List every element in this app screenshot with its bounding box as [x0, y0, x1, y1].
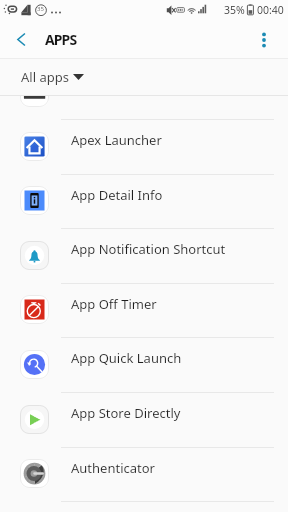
- button[interactable]: App Quick Launch: [0, 338, 288, 392]
- staticText: 35: [37, 5, 44, 13]
- button[interactable]: App Off Timer: [0, 284, 288, 337]
- staticText: All apps: [21, 68, 69, 86]
- staticText: App Store Directly: [71, 404, 181, 422]
- button[interactable]: Apex Launcher: [0, 120, 288, 174]
- staticText: App Detail Info: [71, 186, 163, 204]
- button[interactable]: [0, 96, 288, 119]
- button[interactable]: App Notification Shortcut: [0, 229, 288, 283]
- button[interactable]: Navigate up: [0, 21, 37, 58]
- button[interactable]: App Detail Info: [0, 175, 288, 228]
- button[interactable]: App Store Directly: [0, 393, 288, 447]
- staticText: App Notification Shortcut: [71, 240, 226, 258]
- staticText: 35%: [224, 3, 245, 17]
- staticText: Authenticator: [71, 459, 155, 477]
- button[interactable]: More options: [251, 21, 288, 58]
- button[interactable]: Authenticator: [0, 448, 288, 501]
- staticText: APPS: [45, 30, 77, 49]
- staticText: Apex Launcher: [71, 131, 162, 149]
- staticText: App Off Timer: [71, 295, 157, 313]
- staticText: 00:40: [257, 3, 284, 17]
- button[interactable]: All apps: [0, 58, 288, 96]
- staticText: App Quick Launch: [71, 349, 182, 367]
